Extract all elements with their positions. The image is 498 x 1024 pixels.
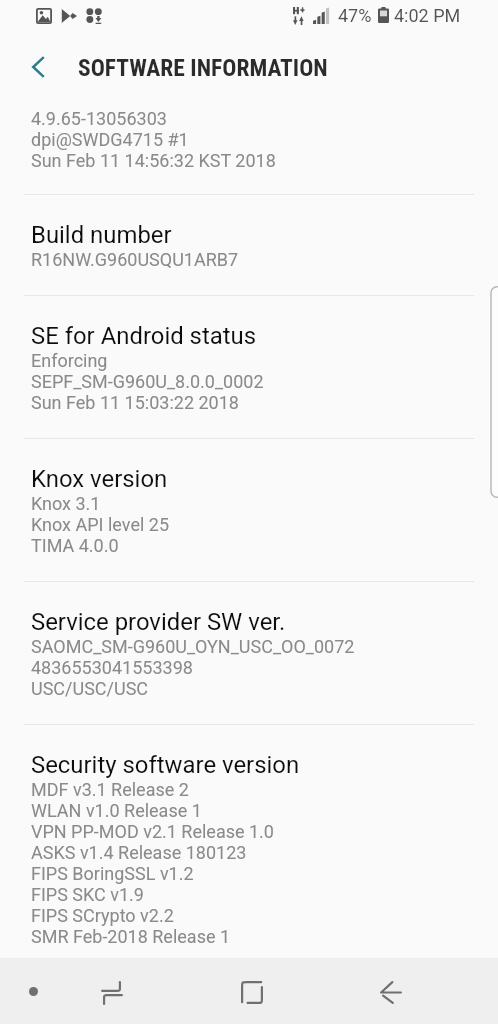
staticText: Sun Feb 11 15:03:22 2018: [31, 392, 239, 413]
staticText: SE for Android status: [31, 323, 257, 350]
staticText: TIMA 4.0.0: [31, 535, 119, 556]
staticText: 47%: [338, 5, 372, 26]
staticText: Enforcing: [31, 350, 108, 371]
staticText: MDF v3.1 Release 2: [31, 779, 189, 800]
staticText: SAOMC_SM-G960U_OYN_USC_OO_0072: [31, 636, 355, 657]
staticText: SOFTWARE INFORMATION: [78, 54, 328, 82]
staticText: Service provider SW ver.: [31, 609, 286, 636]
staticText: R16NW.G960USQU1ARB7: [31, 249, 239, 270]
staticText: FIPS BoringSSL v1.2: [31, 863, 194, 884]
button[interactable]: Knox version: [24, 439, 474, 581]
staticText: FIPS SKC v1.9: [31, 884, 144, 905]
button[interactable]: Build number: [24, 195, 474, 295]
staticText: dpi@SWDG4715 #1: [31, 129, 189, 150]
staticText: Security software version: [31, 752, 300, 779]
button[interactable]: Navigate up: [14, 44, 62, 90]
staticText: Knox version: [31, 466, 168, 493]
staticText: USC/USC/USC: [31, 678, 149, 699]
button[interactable]: SE for Android status: [24, 296, 474, 438]
staticText: Knox 3.1: [31, 493, 101, 514]
staticText: 4:02 PM: [394, 5, 461, 26]
staticText: Sun Feb 11 14:56:32 KST 2018: [31, 150, 276, 171]
button[interactable]: Back: [366, 968, 415, 1017]
staticText: SMR Feb-2018 Release 1: [31, 926, 231, 947]
button[interactable]: Home: [227, 968, 276, 1017]
staticText: WLAN v1.0 Release 1: [31, 800, 202, 821]
staticText: VPN PP-MOD v2.1 Release 1.0: [31, 821, 274, 842]
staticText: FIPS SCrypto v2.2: [31, 905, 174, 926]
staticText: ASKS v1.4 Release 180123: [31, 842, 247, 863]
staticText: 4.9.65-13056303: [31, 108, 167, 129]
button[interactable]: Security software version: [24, 725, 474, 972]
staticText: Knox API level 25: [31, 514, 169, 535]
staticText: Build number: [31, 222, 172, 249]
button[interactable]: Service provider SW ver.: [24, 582, 474, 724]
staticText: 4836553041553398: [31, 657, 193, 678]
staticText: SEPF_SM-G960U_8.0.0_0002: [31, 371, 264, 392]
button[interactable]: Hide keyboard: [13, 971, 53, 1011]
button[interactable]: Recent apps: [87, 968, 136, 1017]
